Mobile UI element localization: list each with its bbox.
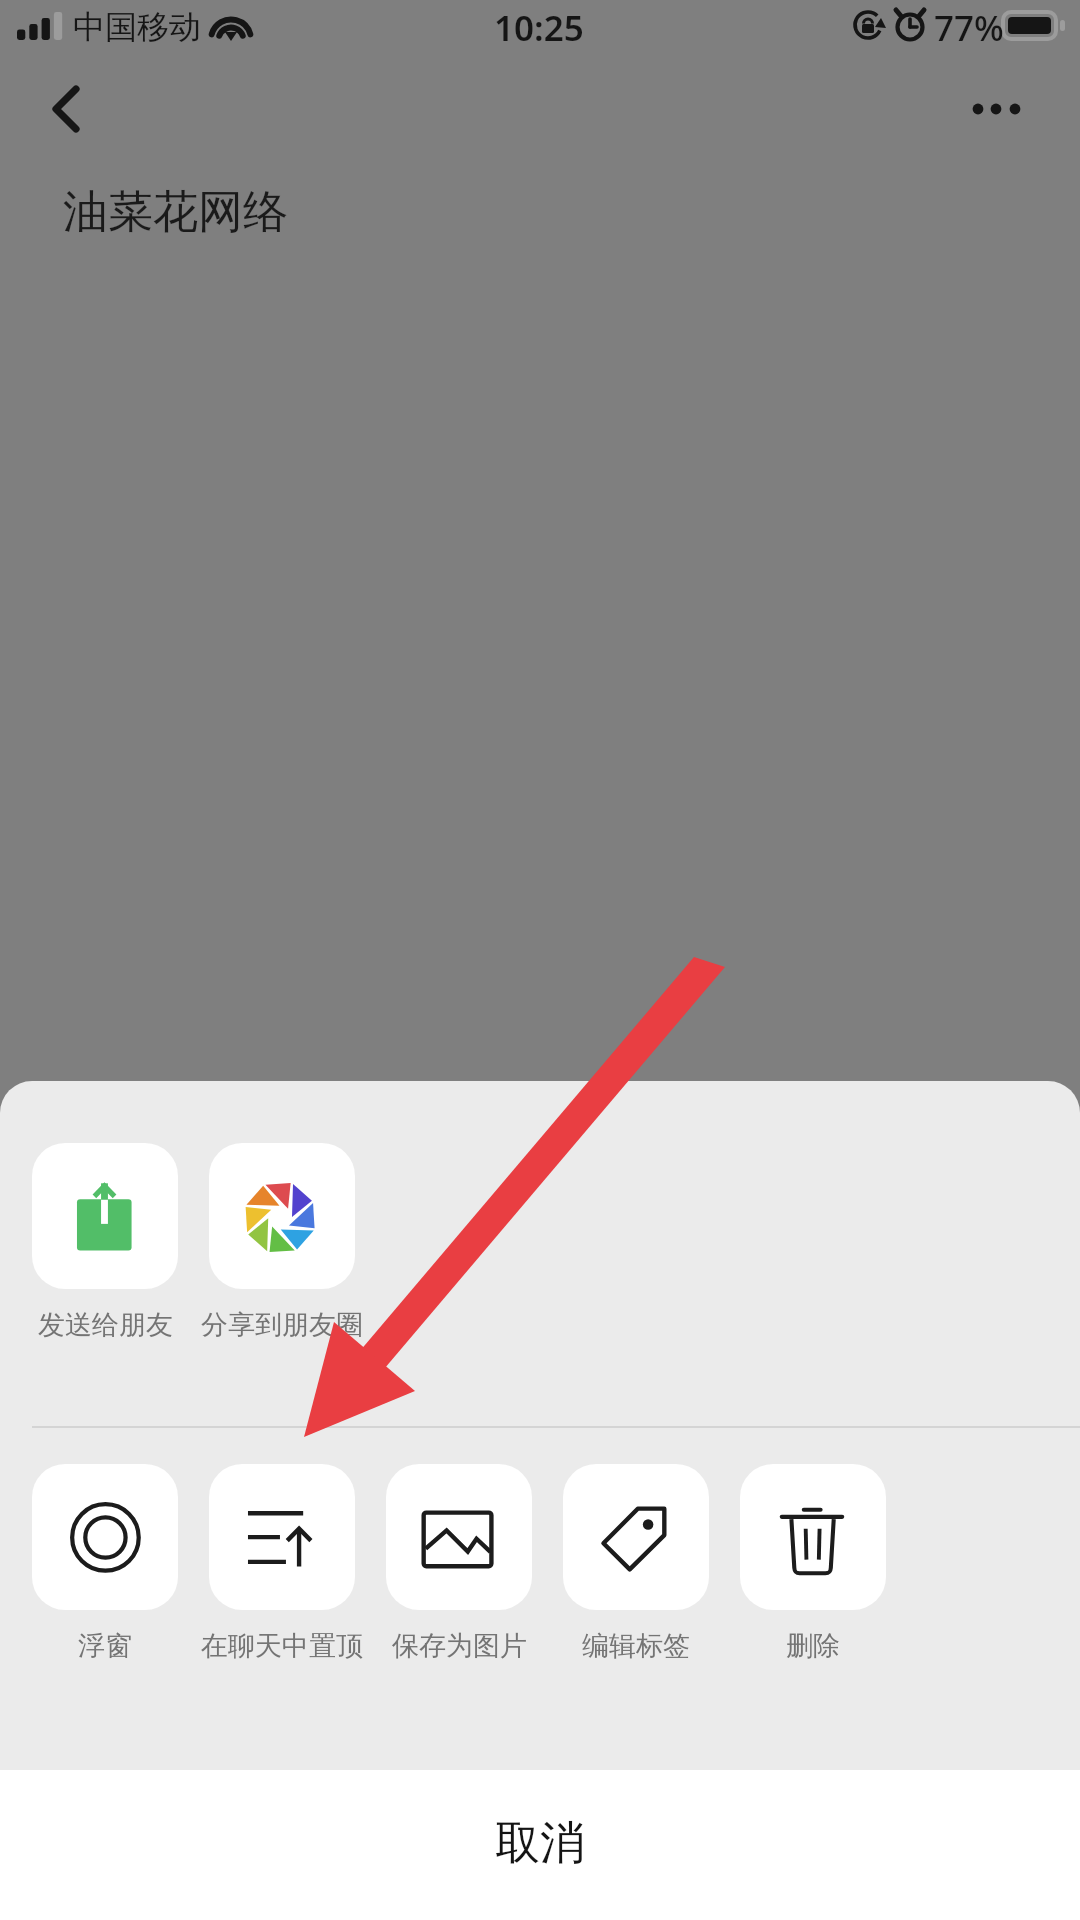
staticText: 油菜花网络 [63,184,288,241]
staticText: 保存为图片 [392,1629,527,1663]
staticText: 在聊天中置顶 [201,1629,363,1663]
staticText: 10:25 [494,4,584,52]
staticText: 删除 [786,1629,840,1663]
button[interactable] [386,1464,532,1610]
staticText: 发送给朋友 [38,1308,173,1342]
button[interactable] [563,1464,709,1610]
staticText: 浮窗 [78,1629,132,1663]
staticText: 中国移动 [73,7,201,47]
button[interactable]: Back [20,64,108,152]
staticText: 取消 [495,1815,585,1872]
button[interactable] [740,1464,886,1610]
button[interactable] [32,1464,178,1610]
staticText: 分享到朋友圈 [201,1308,363,1342]
button[interactable]: 取消 [0,1770,1080,1920]
staticText: 77% [934,4,1004,52]
staticText: 编辑标签 [582,1629,690,1663]
button[interactable] [209,1143,355,1289]
button[interactable]: More options [950,66,1042,158]
button[interactable] [32,1143,178,1289]
button[interactable] [209,1464,355,1610]
